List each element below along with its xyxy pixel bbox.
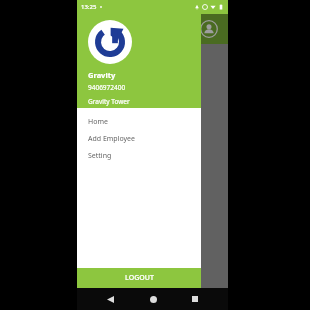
button[interactable]: Add Employee	[77, 130, 201, 147]
staticText: 9406972400	[88, 83, 126, 92]
button[interactable]: Home	[143, 289, 163, 309]
button[interactable]: Account	[200, 20, 218, 38]
button[interactable]: Back	[100, 289, 120, 309]
staticText: Gravity Tower	[88, 97, 130, 106]
button[interactable]: Setting	[77, 147, 201, 164]
button[interactable]: Home	[77, 113, 201, 130]
button[interactable]: LOGOUT	[77, 268, 201, 288]
staticText: Home	[88, 117, 108, 127]
button[interactable]: Recent apps	[185, 289, 205, 309]
staticText: 13:25	[81, 3, 97, 11]
staticText: LOGOUT	[125, 273, 154, 283]
staticText: Gravity	[88, 70, 116, 80]
staticText: Setting	[88, 151, 112, 161]
staticText: Add Employee	[88, 134, 136, 144]
